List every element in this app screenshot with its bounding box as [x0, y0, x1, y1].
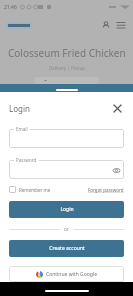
staticText: Continue with Google — [46, 271, 97, 278]
button[interactable]: Account — [100, 19, 112, 31]
button[interactable]: Continue with Google — [9, 266, 124, 282]
button[interactable]: Remember me — [9, 186, 51, 193]
button[interactable]: Forgot password — [88, 187, 124, 193]
button[interactable]: Open 16:00 - 23:00 — [34, 77, 99, 84]
button[interactable]: Login — [9, 201, 124, 218]
button[interactable]: Menu — [115, 19, 127, 31]
staticText: Remember me — [19, 187, 51, 193]
button[interactable] — [9, 160, 124, 179]
staticText: Password — [16, 157, 37, 163]
staticText: Login — [9, 103, 30, 114]
staticText: or — [64, 226, 69, 232]
button[interactable]: Logo — [6, 22, 32, 29]
staticText: Colosseum Fried Chicken — [8, 46, 126, 60]
staticText: 21:46 — [4, 4, 17, 11]
button[interactable]: Show password — [112, 166, 120, 174]
staticText: Login — [60, 206, 74, 213]
staticText: Create account — [49, 245, 85, 252]
button[interactable] — [9, 129, 124, 148]
button[interactable]: Create account — [9, 240, 124, 257]
staticText: Forgot password — [88, 187, 124, 193]
button[interactable]: Close — [111, 102, 124, 115]
staticText: Delivery | Pickup — [49, 65, 85, 71]
staticText: Email — [16, 126, 28, 132]
